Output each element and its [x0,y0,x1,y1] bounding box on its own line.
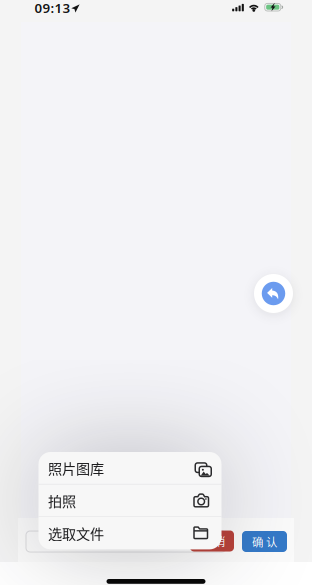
button[interactable]: 拍照 [38,484,221,517]
staticText: 拍照 [48,490,76,511]
staticText: 确 认 [252,533,277,550]
staticText: 取 消 [200,533,225,549]
staticText: 09:13 [34,0,70,17]
button[interactable]: 取 消 [190,530,234,551]
button[interactable]: 选取文件 [38,517,221,549]
staticText: 选取文件 [48,523,104,543]
staticText: 照片图库 [48,458,104,478]
button[interactable]: 确 认 [242,531,287,552]
button[interactable]: 照片图库 [38,452,221,484]
